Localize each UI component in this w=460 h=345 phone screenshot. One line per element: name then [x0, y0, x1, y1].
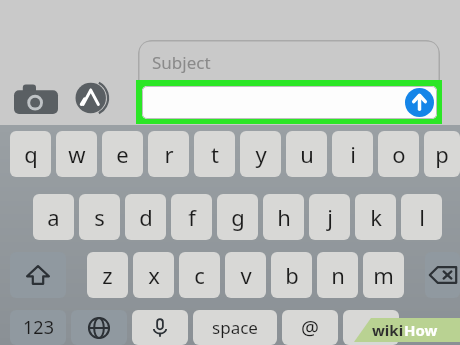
button[interactable]: e — [102, 131, 143, 177]
staticText: v — [240, 260, 252, 290]
button[interactable]: Dictate — [132, 310, 188, 345]
button[interactable]: . — [343, 310, 399, 345]
staticText: 123 — [23, 315, 54, 340]
button[interactable]: Camera — [14, 82, 58, 114]
staticText: r — [164, 139, 174, 169]
staticText: a — [47, 202, 60, 232]
button[interactable]: t — [194, 131, 235, 177]
staticText: m — [373, 260, 394, 290]
button[interactable]: k — [355, 194, 396, 240]
button[interactable]: Send — [405, 88, 434, 117]
button[interactable]: h — [263, 194, 304, 240]
staticText: t — [211, 139, 219, 169]
staticText: z — [102, 260, 113, 290]
button[interactable]: p — [424, 131, 460, 177]
button[interactable]: n — [317, 252, 358, 298]
button[interactable]: z — [87, 252, 128, 298]
staticText: b — [285, 260, 299, 290]
button[interactable]: m — [363, 252, 404, 298]
button[interactable]: d — [125, 194, 166, 240]
staticText: j — [327, 202, 333, 232]
staticText: q — [24, 139, 38, 169]
button[interactable]: c — [179, 252, 220, 298]
staticText: g — [231, 202, 245, 232]
staticText: space — [212, 316, 258, 339]
button[interactable]: q — [10, 131, 51, 177]
staticText: k — [370, 202, 382, 232]
staticText: @ — [301, 314, 319, 341]
button[interactable]: Send — [136, 80, 442, 124]
button[interactable]: v — [225, 252, 266, 298]
button[interactable]: Change keyboard — [71, 310, 127, 345]
button[interactable]: i — [332, 131, 373, 177]
button[interactable]: o — [378, 131, 419, 177]
staticText: x — [148, 260, 160, 290]
button[interactable]: b — [271, 252, 312, 298]
staticText: y — [255, 139, 267, 169]
staticText: n — [331, 260, 345, 290]
staticText: u — [300, 139, 314, 169]
button[interactable]: f — [171, 194, 212, 240]
button[interactable]: x — [133, 252, 174, 298]
button[interactable]: a — [33, 194, 74, 240]
button[interactable]: Shift — [10, 252, 66, 298]
staticText: . — [368, 314, 374, 341]
staticText: How — [404, 320, 438, 340]
staticText: w — [68, 139, 86, 169]
staticText: c — [194, 260, 205, 290]
button[interactable]: @ — [282, 310, 338, 345]
staticText: o — [392, 139, 406, 169]
staticText: p — [435, 139, 449, 169]
button[interactable]: r — [148, 131, 189, 177]
button[interactable]: l — [401, 194, 442, 240]
button[interactable]: u — [286, 131, 327, 177]
staticText: i — [350, 139, 356, 169]
staticText: e — [116, 139, 129, 169]
button[interactable]: w — [56, 131, 97, 177]
staticText: d — [139, 202, 153, 232]
button[interactable]: space — [193, 310, 277, 345]
button[interactable]: g — [217, 194, 258, 240]
button[interactable]: Backspace — [425, 252, 460, 298]
staticText: l — [419, 202, 425, 232]
button[interactable]: y — [240, 131, 281, 177]
button[interactable]: 123 — [10, 310, 66, 345]
staticText: Subject — [152, 51, 211, 74]
staticText: h — [277, 202, 291, 232]
staticText: wiki — [372, 320, 404, 340]
button[interactable]: j — [309, 194, 350, 240]
button[interactable]: App Store — [74, 79, 112, 117]
button[interactable]: Subject — [138, 40, 440, 85]
staticText: f — [188, 202, 196, 232]
staticText: s — [94, 202, 105, 232]
button[interactable]: s — [79, 194, 120, 240]
